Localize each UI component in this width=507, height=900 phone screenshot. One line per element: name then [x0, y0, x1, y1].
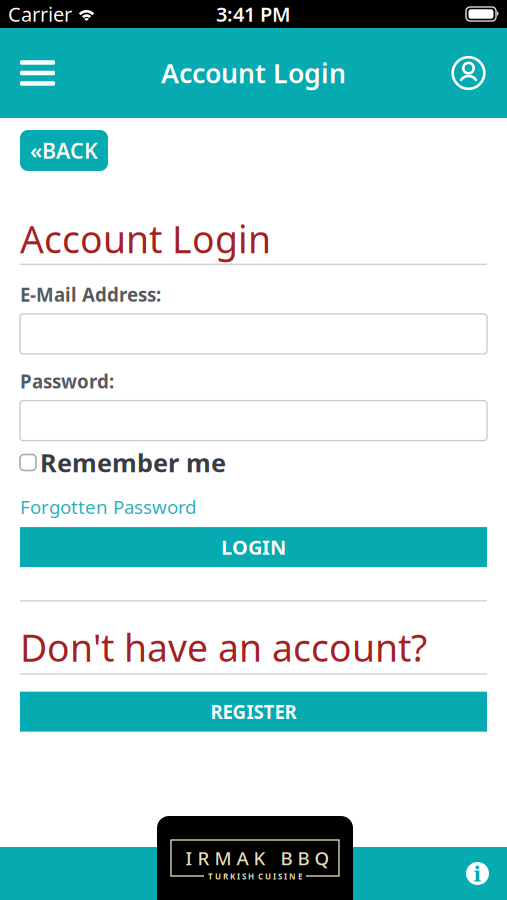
staticText: E-Mail Address:	[20, 282, 161, 307]
staticText: Account Login	[20, 214, 271, 264]
button[interactable]: E-Mail Address	[20, 314, 487, 354]
staticText: «BACK	[30, 136, 98, 165]
staticText: Forgotten Password	[20, 494, 196, 519]
button[interactable]: Account	[451, 37, 507, 108]
button[interactable]: Forgotten Password	[20, 494, 196, 519]
staticText: T U R K I S H C U I S I N E	[208, 871, 302, 882]
button[interactable]: Password	[20, 401, 487, 441]
staticText: Password:	[20, 369, 114, 394]
button[interactable]: Remember me	[20, 446, 226, 479]
staticText: Remember me	[40, 446, 226, 479]
button[interactable]: REGISTER	[20, 692, 487, 732]
staticText: 3:41 PM	[216, 1, 291, 27]
button[interactable]: «BACK	[20, 130, 108, 171]
staticText: LOGIN	[221, 534, 286, 560]
staticText: Carrier	[8, 1, 72, 27]
staticText: Account Login	[161, 55, 346, 91]
button[interactable]: Menu	[0, 40, 55, 106]
staticText: REGISTER	[210, 699, 296, 724]
staticText: i	[473, 863, 481, 886]
button[interactable]: Info	[466, 862, 507, 885]
staticText: IRMAK BBQ	[185, 846, 329, 870]
button[interactable]: LOGIN	[20, 527, 487, 567]
staticText: Don't have an account?	[20, 623, 427, 672]
